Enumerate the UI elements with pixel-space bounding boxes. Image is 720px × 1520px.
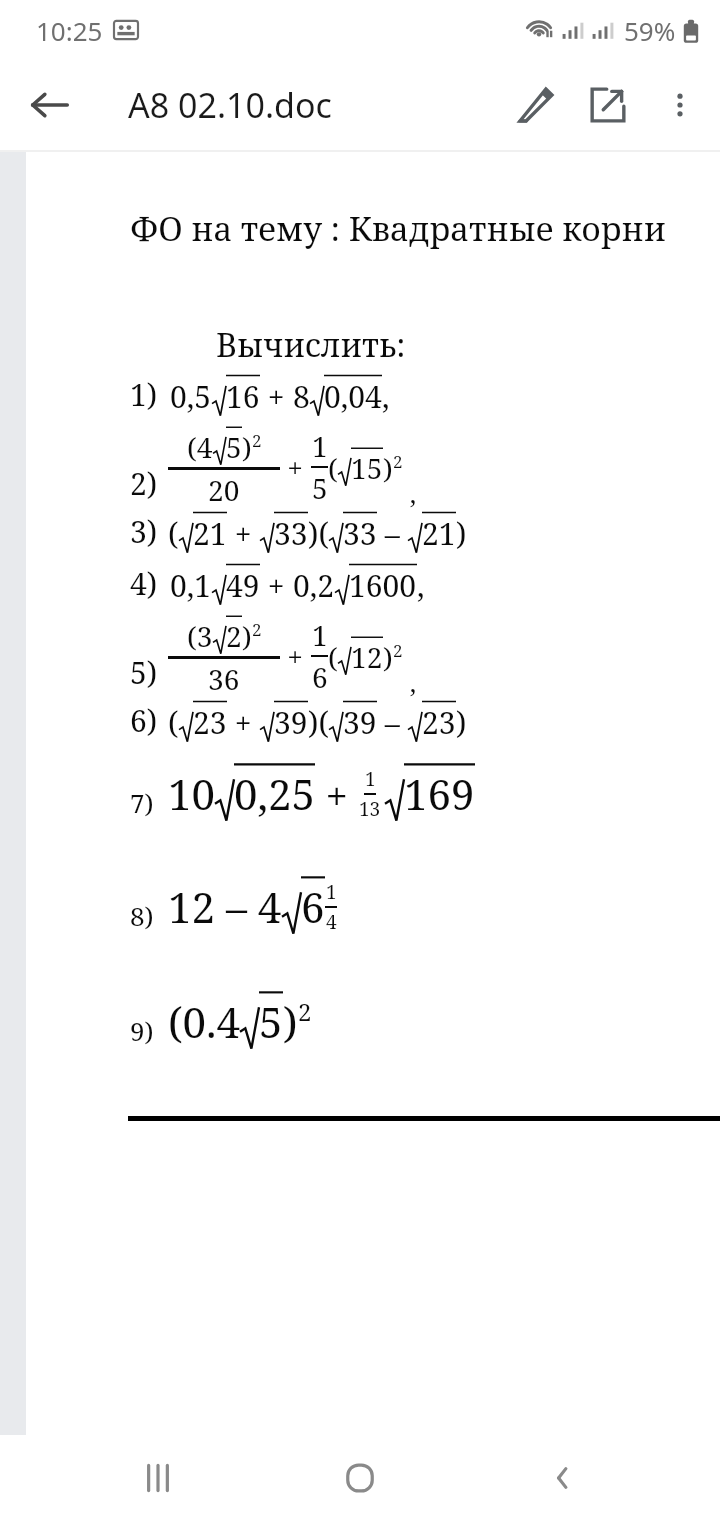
staticText: ( xyxy=(328,638,338,676)
staticText: , xyxy=(417,565,425,606)
staticText: 6 xyxy=(301,878,325,935)
staticText: 21 xyxy=(422,513,456,554)
staticText: 6) xyxy=(130,700,158,741)
staticText: 8) xyxy=(130,898,154,933)
staticText: 1) xyxy=(130,374,158,415)
staticText: 23 xyxy=(422,702,456,743)
staticText: 39 xyxy=(274,702,308,743)
staticText: , xyxy=(403,475,417,510)
button[interactable]: More options xyxy=(644,69,716,141)
staticText: 6 xyxy=(312,658,328,696)
staticText: 0,25 xyxy=(234,765,315,822)
staticText: ( xyxy=(168,702,179,743)
staticText: Вычислить: xyxy=(216,323,406,367)
staticText: 39 xyxy=(343,702,377,743)
button[interactable]: Edit xyxy=(500,69,572,141)
staticText: 4) xyxy=(130,563,158,604)
staticText: 4 xyxy=(326,909,337,935)
staticText: 8 xyxy=(293,376,310,417)
staticText: 2 xyxy=(226,617,242,655)
staticText: 3) xyxy=(130,511,158,552)
staticText: 20 xyxy=(208,471,240,509)
staticText: 0,2 xyxy=(293,565,335,606)
staticText: 169 xyxy=(404,765,475,822)
staticText: 9) xyxy=(130,1013,154,1048)
staticText: ) xyxy=(383,638,393,676)
staticText: (0.4 xyxy=(168,993,240,1050)
staticText: A8 02.10.doc xyxy=(128,82,332,128)
button[interactable]: Recent apps xyxy=(113,1435,203,1520)
staticText: 0,5 xyxy=(170,376,212,417)
staticText: ) xyxy=(456,702,467,743)
staticText: 2 xyxy=(393,639,403,662)
staticText: 12 xyxy=(351,638,383,676)
staticText: ) xyxy=(242,617,252,655)
staticText: + xyxy=(315,768,359,822)
staticText: 2 xyxy=(393,450,403,473)
staticText: 10:25 xyxy=(36,13,103,48)
staticText: 13 xyxy=(359,796,381,822)
staticText: – xyxy=(377,702,408,743)
staticText: 15 xyxy=(351,449,383,487)
staticText: 49 xyxy=(226,565,260,606)
staticText: 23 xyxy=(193,702,227,743)
staticText: – xyxy=(377,513,408,554)
staticText: 33 xyxy=(274,513,308,554)
button[interactable]: Back xyxy=(518,1435,608,1520)
staticText: (3 xyxy=(187,617,213,655)
staticText: ) xyxy=(383,449,393,487)
staticText: 1 xyxy=(326,879,337,905)
staticText: ) xyxy=(242,428,252,466)
staticText: 5 xyxy=(259,993,283,1050)
staticText: + xyxy=(280,637,311,675)
staticText: 5) xyxy=(130,652,158,693)
staticText: (4 xyxy=(187,428,213,466)
staticText: , xyxy=(403,664,417,699)
staticText: ФО на тему : Квадратные корни xyxy=(130,206,666,251)
staticText: + xyxy=(260,376,293,417)
staticText: ) xyxy=(283,993,298,1050)
staticText: 16 xyxy=(226,376,260,417)
staticText: )( xyxy=(308,702,329,743)
staticText: 33 xyxy=(343,513,377,554)
staticText: 21 xyxy=(193,513,227,554)
staticText: 10 xyxy=(168,765,215,822)
staticText: 5 xyxy=(312,469,328,507)
staticText: )( xyxy=(308,513,329,554)
staticText: 2 xyxy=(252,618,262,641)
staticText: 1 xyxy=(365,766,376,792)
staticText: 36 xyxy=(208,660,240,698)
staticText: ) xyxy=(456,513,467,554)
button[interactable]: Back xyxy=(14,69,86,141)
button[interactable]: Open externally xyxy=(572,69,644,141)
staticText: 1 xyxy=(312,427,328,465)
button[interactable]: Home xyxy=(315,1435,405,1520)
staticText: 1600 xyxy=(349,565,417,606)
staticText: 2 xyxy=(252,429,262,452)
staticText: 2 xyxy=(298,995,312,1028)
staticText: 0,1 xyxy=(170,565,212,606)
staticText: + xyxy=(260,565,293,606)
staticText: 2) xyxy=(130,463,158,504)
staticText: + xyxy=(280,448,311,486)
staticText: 1 xyxy=(312,616,328,654)
staticText: + xyxy=(227,513,260,554)
staticText: , xyxy=(382,376,390,417)
staticText: 12 – 4 xyxy=(168,878,282,935)
staticText: ( xyxy=(328,449,338,487)
staticText: 0,04 xyxy=(324,376,382,417)
staticText: 59% xyxy=(624,13,676,48)
staticText: 7) xyxy=(130,785,154,820)
staticText: 5 xyxy=(226,428,242,466)
staticText: ( xyxy=(168,513,179,554)
staticText: + xyxy=(227,702,260,743)
